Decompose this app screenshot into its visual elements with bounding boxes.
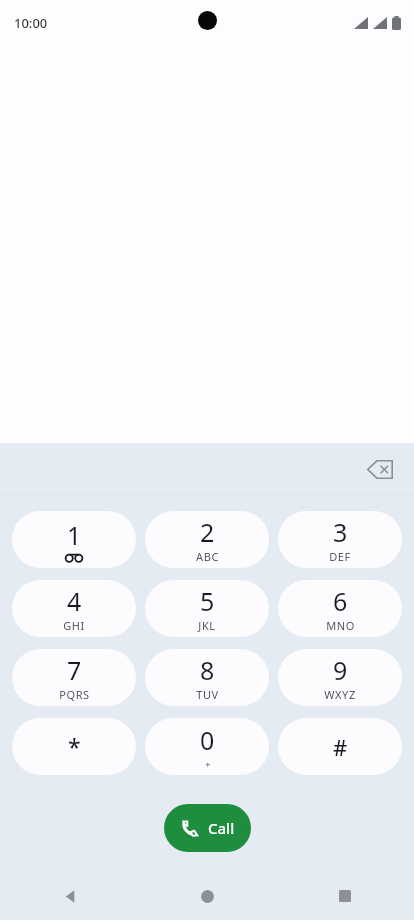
button[interactable]: Home xyxy=(138,872,276,920)
button[interactable]: Backspace xyxy=(358,447,402,491)
button[interactable]: 8 xyxy=(145,649,269,706)
staticText: 2 xyxy=(200,515,215,549)
staticText: 5 xyxy=(200,584,215,618)
staticText: # xyxy=(333,732,348,762)
staticText: MNO xyxy=(326,618,355,633)
staticText: ABC xyxy=(196,549,219,564)
button[interactable]: 3 xyxy=(278,511,402,568)
staticText: 9 xyxy=(333,653,348,687)
button[interactable]: 1 xyxy=(12,511,136,568)
button[interactable]: 9 xyxy=(278,649,402,706)
staticText: GHI xyxy=(63,618,85,633)
staticText: 7 xyxy=(67,653,82,687)
staticText: 3 xyxy=(333,515,348,549)
staticText: 10:00 xyxy=(14,14,48,32)
button[interactable]: # xyxy=(278,718,402,775)
staticText: 4 xyxy=(67,584,82,618)
staticText: WXYZ xyxy=(324,687,356,702)
button[interactable]: 0 xyxy=(145,718,269,775)
button[interactable]: 7 xyxy=(12,649,136,706)
staticText: TUV xyxy=(196,687,219,702)
staticText: PQRS xyxy=(59,687,90,702)
staticText: + xyxy=(205,758,211,770)
button[interactable]: Call xyxy=(164,804,251,852)
button[interactable]: Back xyxy=(0,872,138,920)
button[interactable]: 5 xyxy=(145,580,269,637)
button[interactable]: Recent apps xyxy=(276,872,414,920)
staticText: JKL xyxy=(198,618,216,633)
staticText: DEF xyxy=(329,549,351,564)
button[interactable]: 4 xyxy=(12,580,136,637)
staticText: 6 xyxy=(333,584,348,618)
button[interactable]: 2 xyxy=(145,511,269,568)
staticText: * xyxy=(68,731,81,762)
staticText: 0 xyxy=(200,723,215,757)
button[interactable]: 6 xyxy=(278,580,402,637)
staticText: 1 xyxy=(67,518,82,552)
staticText: Call xyxy=(208,818,235,838)
button[interactable]: * xyxy=(12,718,136,775)
staticText: 8 xyxy=(200,653,215,687)
